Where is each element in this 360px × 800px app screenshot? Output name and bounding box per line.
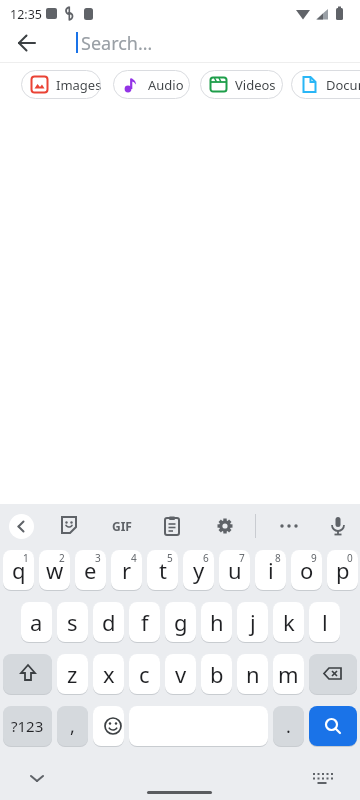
button[interactable] — [212, 513, 238, 539]
staticText: r — [122, 555, 132, 585]
staticText: a — [30, 607, 43, 637]
staticText: Audio — [148, 76, 184, 94]
staticText: 7 — [239, 551, 245, 565]
staticText: 2 — [59, 551, 65, 565]
staticText: x — [103, 659, 115, 689]
staticText: , — [70, 714, 75, 739]
button[interactable] — [159, 513, 185, 539]
button[interactable] — [9, 514, 34, 539]
button[interactable] — [276, 513, 302, 539]
staticText: Docum — [326, 76, 360, 94]
staticText: e — [84, 555, 97, 585]
staticText: d — [102, 607, 116, 637]
staticText: i — [268, 555, 274, 585]
button[interactable]: . — [273, 706, 304, 746]
staticText: o — [300, 555, 314, 585]
staticText: Search… — [81, 31, 153, 56]
button[interactable]: i — [255, 550, 286, 590]
button[interactable]: Images — [21, 70, 101, 99]
button[interactable]: f — [129, 602, 160, 642]
button[interactable]: m — [273, 654, 304, 694]
staticText: b — [210, 659, 224, 689]
staticText: Videos — [235, 76, 276, 94]
staticText: 5 — [167, 551, 173, 565]
button[interactable]: a — [21, 602, 52, 642]
button[interactable]: y — [183, 550, 214, 590]
staticText: ?123 — [11, 716, 44, 736]
staticText: q — [12, 555, 26, 585]
button[interactable]: g — [165, 602, 196, 642]
button[interactable]: t — [147, 550, 178, 590]
button[interactable] — [309, 765, 335, 791]
staticText: GIF — [112, 518, 132, 534]
button[interactable]: d — [93, 602, 124, 642]
staticText: . — [286, 714, 291, 739]
staticText: v — [175, 659, 187, 689]
button[interactable]: r — [111, 550, 142, 590]
button[interactable]: c — [129, 654, 160, 694]
button[interactable]: s — [57, 602, 88, 642]
staticText: g — [174, 607, 188, 637]
button[interactable] — [93, 706, 124, 746]
button[interactable]: j — [237, 602, 268, 642]
button[interactable]: Docum — [291, 70, 360, 99]
staticText: h — [210, 607, 224, 637]
button[interactable]: , — [57, 706, 88, 746]
button[interactable] — [10, 26, 44, 60]
button[interactable]: v — [165, 654, 196, 694]
button[interactable]: o — [291, 550, 322, 590]
staticText: 3 — [95, 551, 101, 565]
button[interactable]: h — [201, 602, 232, 642]
staticText: k — [283, 607, 295, 637]
button[interactable]: p — [327, 550, 358, 590]
staticText: c — [139, 659, 150, 689]
button[interactable] — [24, 765, 50, 791]
button[interactable] — [56, 513, 82, 539]
button[interactable]: e — [75, 550, 106, 590]
staticText: 12:35 — [10, 6, 42, 23]
staticText: m — [278, 659, 299, 689]
staticText: y — [193, 555, 205, 585]
staticText: l — [322, 607, 328, 637]
staticText: t — [159, 555, 167, 585]
button[interactable]: x — [93, 654, 124, 694]
staticText: p — [336, 555, 350, 585]
staticText: Images — [56, 76, 101, 94]
staticText: n — [246, 659, 260, 689]
button[interactable] — [309, 654, 357, 694]
button[interactable] — [325, 513, 351, 539]
button[interactable]: u — [219, 550, 250, 590]
staticText: u — [228, 555, 242, 585]
staticText: f — [141, 607, 149, 637]
staticText: 1 — [23, 551, 29, 565]
staticText: 9 — [311, 551, 317, 565]
button[interactable]: Videos — [200, 70, 283, 99]
button[interactable]: b — [201, 654, 232, 694]
staticText: w — [46, 555, 64, 585]
button[interactable]: ?123 — [3, 706, 52, 746]
button[interactable]: z — [57, 654, 88, 694]
button[interactable]: Audio — [113, 70, 190, 99]
staticText: j — [250, 607, 256, 637]
staticText: 6 — [203, 551, 209, 565]
button[interactable] — [3, 654, 52, 694]
staticText: 4 — [131, 551, 137, 565]
button[interactable] — [309, 706, 357, 746]
button[interactable]: GIF — [107, 513, 137, 539]
button[interactable]: w — [39, 550, 70, 590]
staticText: s — [67, 607, 78, 637]
button[interactable]: k — [273, 602, 304, 642]
staticText: z — [67, 659, 78, 689]
staticText: 0 — [347, 551, 353, 565]
button[interactable]: q — [3, 550, 34, 590]
button[interactable]: n — [237, 654, 268, 694]
button[interactable]: l — [309, 602, 340, 642]
staticText: 8 — [275, 551, 281, 565]
